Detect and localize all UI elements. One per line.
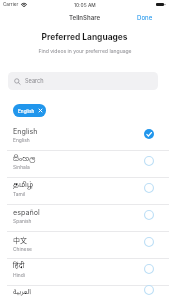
staticText: Carrier	[3, 2, 19, 8]
button[interactable]: Done	[129, 11, 169, 24]
staticText: தமிழ்	[13, 181, 34, 190]
staticText: Spanish	[13, 218, 32, 224]
staticText: Preferred Languages	[41, 32, 128, 42]
staticText: Hindi	[13, 272, 25, 278]
button[interactable]: සිංහල	[0, 151, 169, 177]
staticText: Done	[137, 14, 153, 21]
staticText: English	[13, 137, 30, 143]
staticText: English	[18, 108, 35, 114]
button[interactable]: 中文	[0, 232, 169, 258]
staticText: हिंदी	[13, 262, 25, 271]
staticText: Search	[25, 78, 44, 85]
staticText: español	[13, 208, 40, 217]
staticText: 10:05 AM	[74, 2, 96, 8]
staticText: العربية	[13, 284, 32, 298]
button[interactable]: English	[0, 124, 169, 150]
staticText: Tamil	[13, 191, 26, 197]
button[interactable]: தமிழ்	[0, 178, 169, 204]
staticText: Chinese	[13, 246, 32, 252]
button[interactable]: हिंदी	[0, 259, 169, 285]
button[interactable]: Search languages	[8, 72, 158, 90]
button[interactable]: English	[13, 104, 46, 117]
staticText: Sinhala	[13, 164, 30, 170]
button[interactable]: español	[0, 205, 169, 231]
staticText: TellnShare	[69, 14, 101, 21]
staticText: 中文	[13, 235, 27, 245]
staticText: Find videos in your preferred language	[38, 48, 132, 54]
button[interactable]: العربية	[0, 286, 169, 300]
staticText: English	[13, 127, 38, 136]
staticText: සිංහල	[13, 154, 36, 163]
